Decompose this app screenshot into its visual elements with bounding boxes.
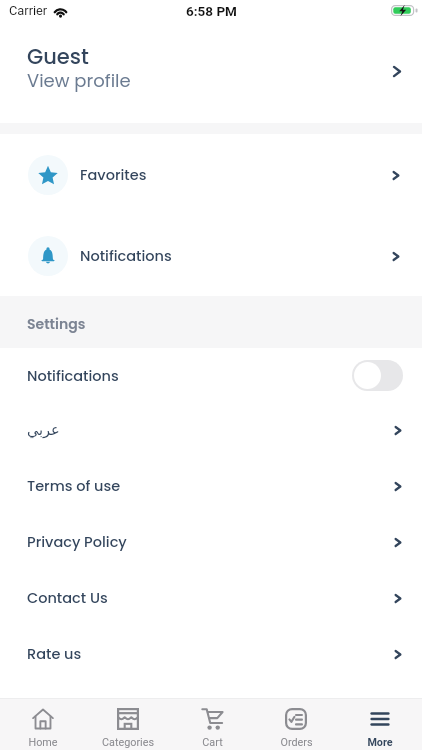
staticText: Carrier	[9, 3, 48, 18]
button[interactable]: Notifications	[0, 348, 422, 402]
button[interactable]: More	[338, 699, 422, 750]
button[interactable]: Terms of use	[0, 458, 422, 514]
staticText: Guest	[27, 42, 89, 71]
staticText: Notifications	[80, 246, 172, 266]
button[interactable]: Rate us	[0, 626, 422, 682]
staticText: Notifications	[27, 366, 119, 386]
other: Battery charging	[391, 5, 418, 16]
staticText: Privacy Policy	[27, 532, 127, 552]
other: View profile	[392, 63, 402, 80]
staticText: Categories	[102, 736, 154, 749]
staticText: Home	[28, 736, 58, 749]
staticText: View profile	[27, 68, 131, 93]
staticText: Orders	[280, 736, 313, 749]
staticText: 6:58 PM	[186, 3, 237, 19]
button[interactable]: Privacy Policy	[0, 514, 422, 570]
button[interactable]: Cart	[170, 699, 254, 750]
button[interactable]: Categories	[85, 699, 170, 750]
staticText: More	[367, 736, 393, 749]
staticText: Rate us	[27, 644, 82, 664]
button[interactable]: Orders	[254, 699, 338, 750]
staticText: عربي	[27, 422, 60, 439]
staticText: Cart	[202, 736, 223, 749]
button[interactable]: Contact Us	[0, 570, 422, 626]
button[interactable]: Guest	[0, 24, 422, 123]
staticText: Terms of use	[27, 476, 121, 496]
button[interactable]: Notifications	[0, 216, 422, 296]
staticText: Contact Us	[27, 588, 108, 608]
button[interactable]: Favorites	[0, 134, 422, 216]
button[interactable]: Home	[0, 699, 85, 750]
staticText: Favorites	[80, 165, 147, 185]
staticText: Settings	[27, 314, 86, 334]
button[interactable]: عربي	[0, 402, 422, 458]
